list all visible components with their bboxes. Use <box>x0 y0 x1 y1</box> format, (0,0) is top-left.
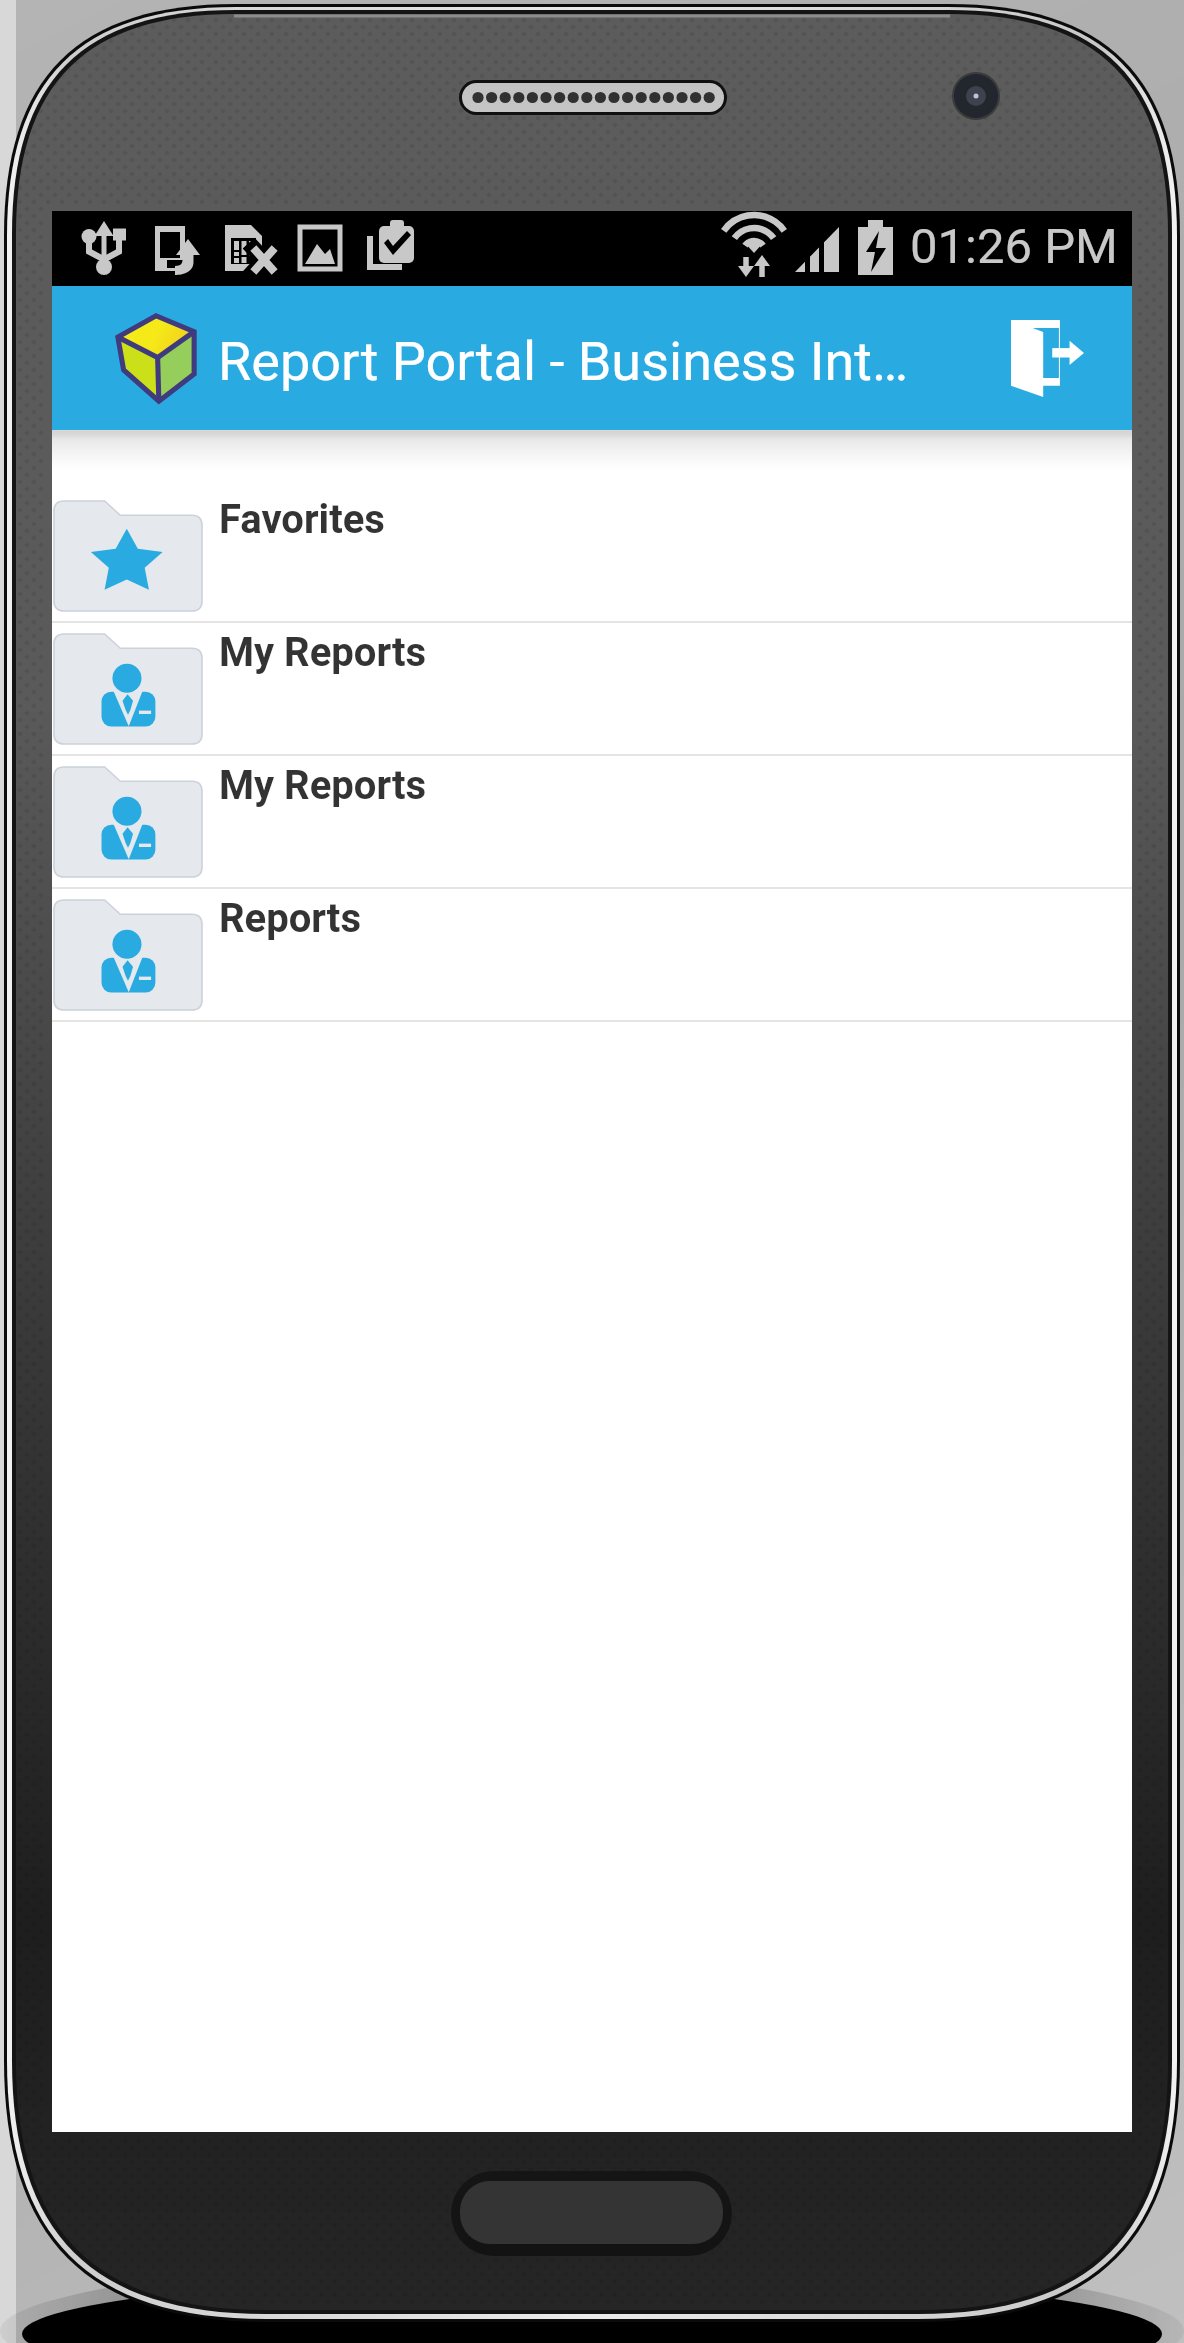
button[interactable]: Reports <box>52 889 1132 1020</box>
staticText: 01:26 PM <box>910 218 1118 275</box>
button[interactable]: My Reports <box>52 756 1132 887</box>
staticText: Report Portal - Business Int… <box>218 330 909 393</box>
staticText: My Reports <box>219 762 427 809</box>
staticText: My Reports <box>219 629 427 676</box>
staticText: Favorites <box>219 496 385 543</box>
button[interactable]: Favorites <box>52 490 1132 621</box>
staticText: Reports <box>219 895 361 942</box>
button[interactable]: My Reports <box>52 623 1132 754</box>
button[interactable]: Logout <box>973 286 1121 430</box>
